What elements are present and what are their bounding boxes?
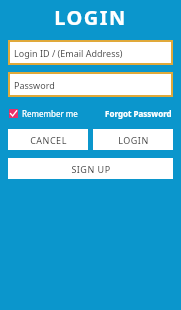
staticText: Forgot Password: [105, 108, 172, 119]
button[interactable]: Remember me checkbox: [9, 106, 78, 121]
staticText: LOGIN: [118, 134, 149, 146]
button[interactable]: Password: [8, 72, 173, 97]
staticText: Login ID / (Email Address): [14, 47, 123, 59]
button[interactable]: CANCEL: [8, 129, 88, 150]
staticText: Password: [14, 79, 55, 91]
staticText: LOGIN: [0, 4, 181, 31]
button[interactable]: Login ID / (Email Address): [8, 40, 173, 65]
other: Remember me checkbox: [9, 109, 18, 118]
staticText: CANCEL: [30, 134, 67, 146]
button[interactable]: LOGIN: [93, 129, 173, 150]
button[interactable]: Forgot Password: [105, 106, 172, 121]
staticText: SIGN UP: [71, 163, 111, 175]
button[interactable]: SIGN UP: [8, 158, 173, 179]
staticText: Remember me: [22, 108, 78, 119]
